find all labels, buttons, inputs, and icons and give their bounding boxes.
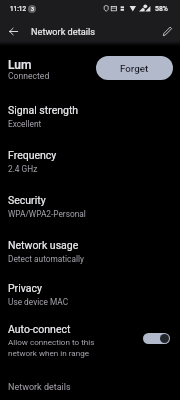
- staticText: 11:12: [10, 5, 26, 12]
- button[interactable]: Back: [1, 19, 25, 43]
- button[interactable]: Security: [0, 191, 180, 233]
- staticText: 3: [31, 6, 34, 12]
- staticText: Security: [8, 194, 46, 206]
- staticText: Connected: [8, 71, 50, 81]
- staticText: WPA/WPA2-Personal: [8, 209, 86, 219]
- button[interactable]: Edit: [155, 19, 179, 43]
- button[interactable]: Network usage: [0, 236, 180, 278]
- staticText: Excellent: [8, 119, 42, 129]
- staticText: Privacy: [8, 282, 42, 294]
- staticText: Signal strength: [8, 104, 79, 116]
- staticText: Detect automatically: [8, 254, 84, 264]
- button[interactable]: Auto-connect: [0, 320, 180, 372]
- staticText: Allow connection to this network when in…: [8, 337, 95, 358]
- staticText: Forget: [120, 63, 149, 74]
- button[interactable]: Privacy: [0, 279, 180, 321]
- staticText: 58%: [155, 5, 168, 13]
- staticText: Auto-connect: [8, 323, 71, 335]
- button[interactable]: Frequency: [0, 146, 180, 188]
- staticText: 2.4 GHz: [8, 164, 38, 174]
- staticText: Network details: [31, 26, 95, 37]
- staticText: Network usage: [8, 239, 79, 251]
- staticText: Lum: [8, 58, 32, 72]
- button[interactable]: Auto-connect toggle: [143, 333, 170, 344]
- staticText: Network details: [8, 382, 71, 393]
- button[interactable]: Signal strength: [0, 101, 180, 143]
- staticText: Frequency: [8, 149, 57, 161]
- button[interactable]: Forget: [96, 56, 173, 80]
- staticText: Use device MAC: [8, 297, 69, 307]
